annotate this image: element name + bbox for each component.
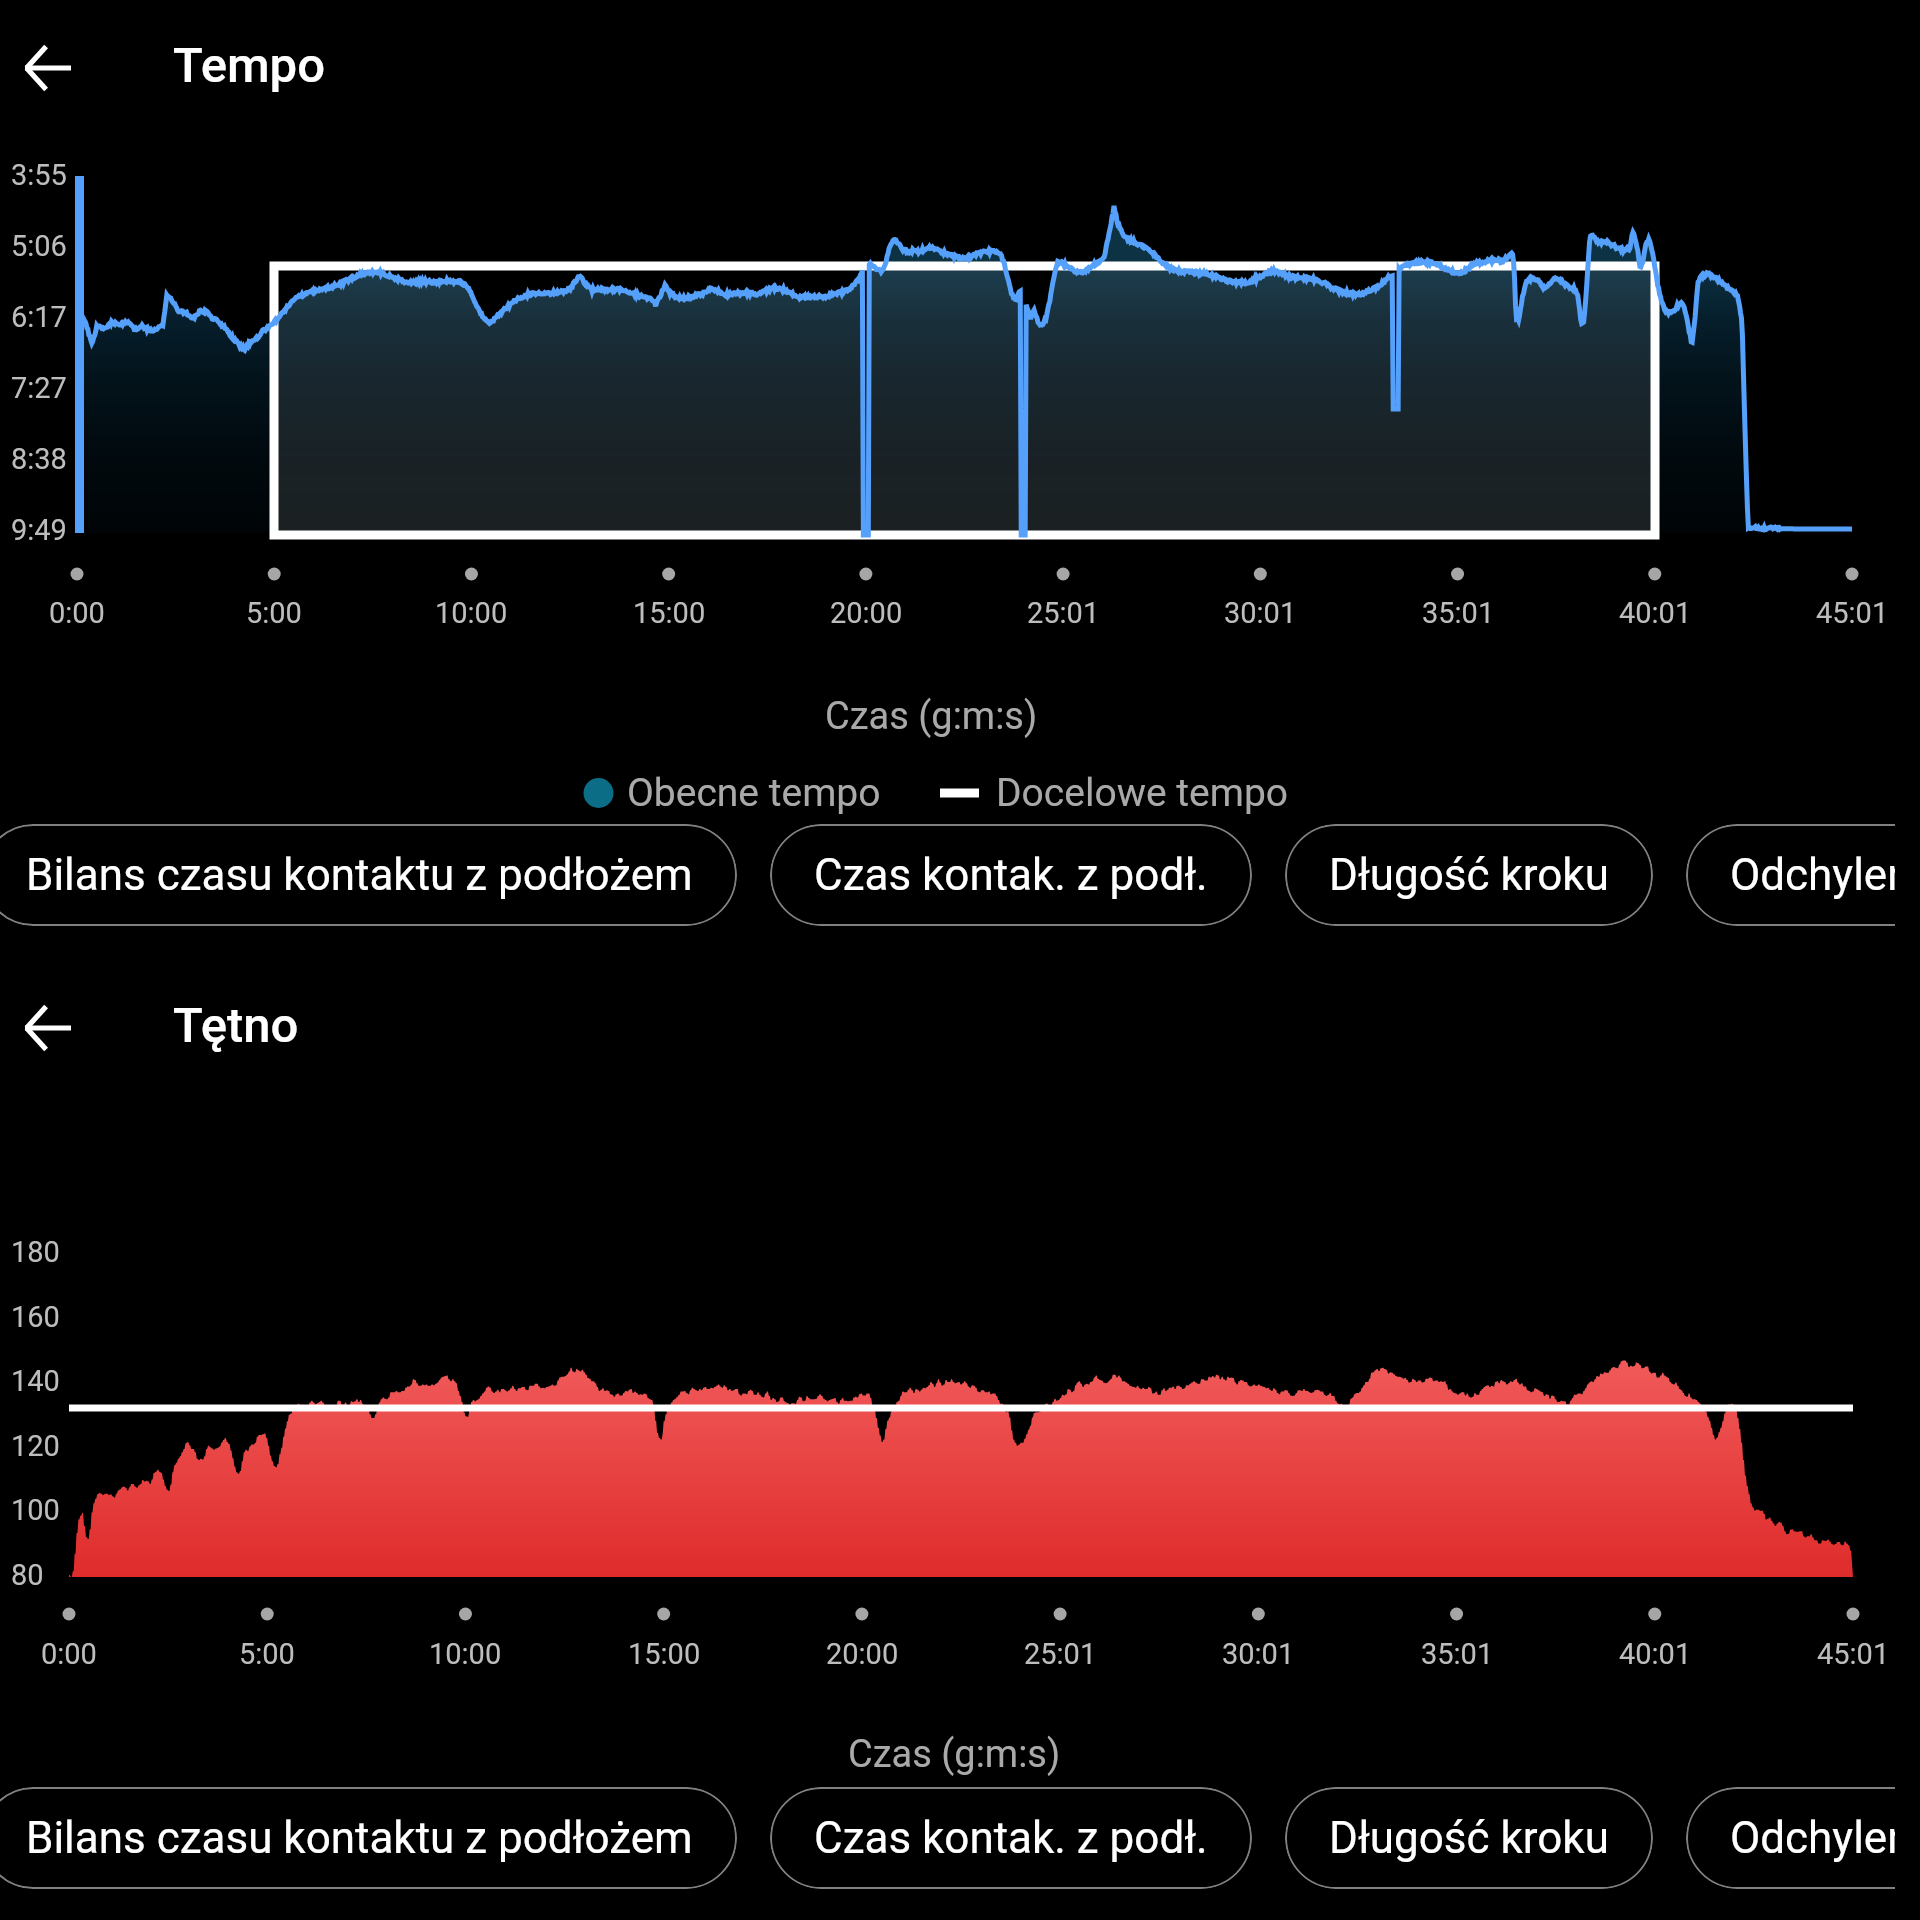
- button[interactable]: Bilans czasu kontaktu z podłożem: [0, 1787, 737, 1889]
- button[interactable]: Długość kroku: [1285, 1787, 1653, 1889]
- staticText: Długość kroku: [1329, 1812, 1609, 1864]
- staticText: Tętno: [173, 997, 299, 1054]
- staticText: Czas (g:m:s): [825, 694, 1038, 739]
- staticText: 20:00: [826, 1637, 899, 1671]
- staticText: 160: [11, 1300, 60, 1334]
- staticText: 45:01: [1817, 1637, 1890, 1671]
- staticText: 25:01: [1027, 596, 1100, 630]
- staticText: Czas (g:m:s): [848, 1732, 1061, 1777]
- staticText: 100: [11, 1493, 60, 1527]
- staticText: 80: [11, 1558, 44, 1592]
- button[interactable]: Bilans czasu kontaktu z podłożem: [0, 824, 737, 926]
- staticText: 10:00: [429, 1637, 502, 1671]
- button[interactable]: Back: [0, 12, 103, 124]
- staticText: Docelowe tempo: [996, 770, 1289, 816]
- staticText: 3:55: [11, 158, 67, 192]
- staticText: 7:27: [11, 371, 67, 405]
- staticText: 9:49: [11, 513, 67, 547]
- staticText: 0:00: [49, 596, 105, 630]
- staticText: 5:00: [246, 596, 302, 630]
- staticText: 5:06: [11, 229, 67, 263]
- staticText: 30:01: [1224, 596, 1297, 630]
- staticText: 40:01: [1619, 1637, 1692, 1671]
- staticText: 0:00: [41, 1637, 97, 1671]
- button[interactable]: Back: [0, 972, 103, 1084]
- staticText: 120: [11, 1429, 60, 1463]
- staticText: 20:00: [830, 596, 903, 630]
- button[interactable]: Czas kontak. z podł.: [770, 1787, 1252, 1889]
- staticText: 15:00: [628, 1637, 701, 1671]
- staticText: 30:01: [1222, 1637, 1295, 1671]
- staticText: 35:01: [1421, 1637, 1494, 1671]
- button[interactable]: Długość kroku: [1285, 824, 1653, 926]
- staticText: 10:00: [435, 596, 508, 630]
- staticText: Czas kontak. z podł.: [814, 849, 1208, 901]
- staticText: Odchylenie: [1730, 1812, 1895, 1864]
- staticText: Długość kroku: [1329, 849, 1609, 901]
- staticText: 25:01: [1024, 1637, 1097, 1671]
- staticText: 40:01: [1619, 596, 1692, 630]
- staticText: 5:00: [239, 1637, 295, 1671]
- button[interactable]: Czas kontak. z podł.: [770, 824, 1252, 926]
- staticText: Obecne tempo: [627, 770, 881, 816]
- staticText: Odchylenie: [1730, 849, 1895, 901]
- staticText: 35:01: [1422, 596, 1495, 630]
- staticText: Czas kontak. z podł.: [814, 1812, 1208, 1864]
- staticText: 15:00: [633, 596, 706, 630]
- staticText: Bilans czasu kontaktu z podłożem: [26, 1812, 693, 1864]
- staticText: 180: [11, 1235, 60, 1269]
- button[interactable]: Odchylenie: [1686, 1787, 1895, 1889]
- staticText: 45:01: [1816, 596, 1889, 630]
- staticText: 8:38: [11, 442, 67, 476]
- staticText: Bilans czasu kontaktu z podłożem: [26, 849, 693, 901]
- staticText: 6:17: [11, 300, 67, 334]
- button[interactable]: Odchylenie: [1686, 824, 1895, 926]
- staticText: 140: [11, 1364, 60, 1398]
- staticText: Tempo: [173, 37, 326, 94]
